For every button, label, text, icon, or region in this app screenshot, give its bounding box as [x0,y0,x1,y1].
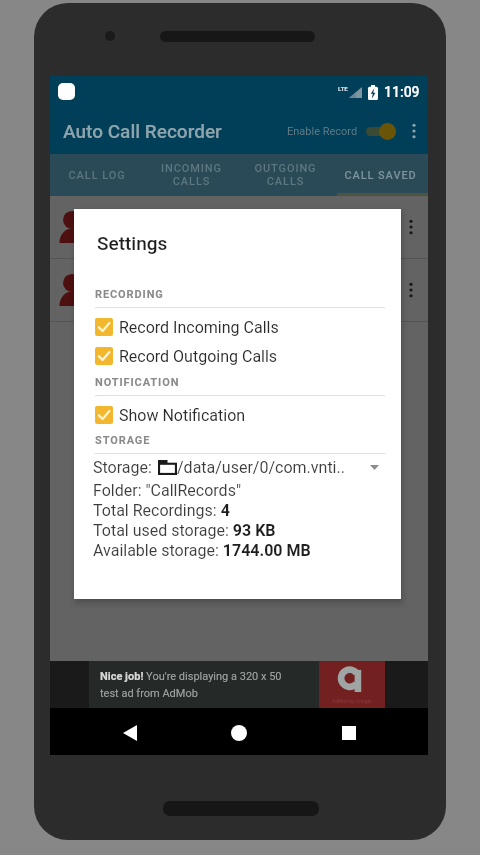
staticText: Record Outgoing Calls [119,347,278,366]
staticText: Available storage: 1744.00 MB [93,541,311,560]
button[interactable]: Recents [319,711,379,755]
staticText: Settings [97,232,168,254]
button[interactable]: Record Outgoing Calls [95,342,385,370]
staticText: Total Recordings: 4 [93,501,230,520]
button[interactable]: Enable Record [284,114,400,148]
staticText: CALL SAVED [344,169,417,182]
button[interactable]: Unknown [50,259,428,321]
staticText: NOTIFICATION [95,376,180,389]
button[interactable]: CALL LOG [50,154,144,196]
staticText: Auto Call Recorder [63,120,222,142]
button[interactable]: Show Notification [95,401,385,429]
button[interactable]: Storage: [93,458,385,477]
staticText: Enable Record [287,125,358,138]
staticText: Unknown [98,274,161,292]
staticText: AdMob by Google [332,698,372,704]
staticText: CALL LOG [68,169,126,182]
staticText: 12 Jun 2020 [98,292,165,306]
button[interactable]: Record Incoming Calls [95,313,385,341]
button[interactable]: Back [100,711,160,755]
staticText: Record Incoming Calls [119,318,279,337]
button[interactable]: CALL SAVED [333,154,428,196]
staticText: Nice job! You're displaying a 320 x 50 t… [100,670,301,699]
button[interactable]: INCOMING CALLS [144,154,238,196]
button[interactable]: OUTGOING CALLS [238,154,333,196]
staticText: 11:09 [384,84,420,100]
staticText: Folder: "CallRecords" [93,481,242,500]
staticText: RECORDING [95,288,164,301]
button[interactable]: Unknown [50,196,428,258]
staticText: Storage: [93,458,152,477]
staticText: Show Notification [119,406,246,425]
staticText: OUTGOING CALLS [254,162,317,188]
staticText: LTE [338,85,348,92]
staticText: 12 Jun 2020 [98,229,165,243]
staticText: STORAGE [95,434,151,447]
button[interactable]: More options [400,107,428,154]
staticText: INCOMING CALLS [161,162,222,188]
staticText: /data/user/0/com.vnti.. [177,458,345,477]
button[interactable]: Home [209,711,269,755]
staticText: Total used storage: 93 KB [93,521,276,540]
